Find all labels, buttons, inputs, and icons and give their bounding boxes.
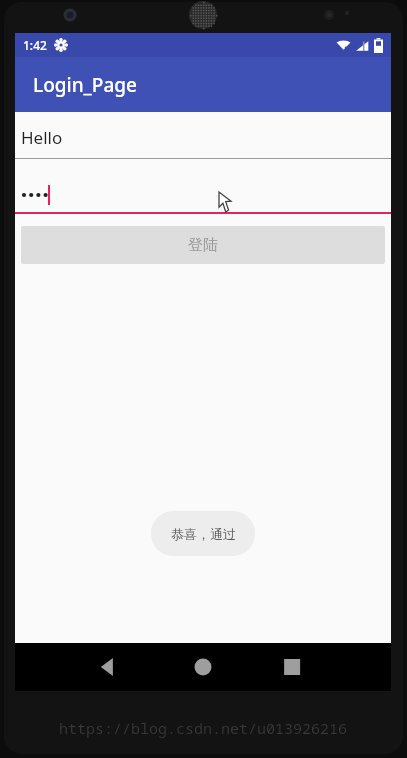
staticText: 1:42 xyxy=(23,37,47,53)
button[interactable]: Hello xyxy=(15,118,391,159)
staticText: https://blog.csdn.net/u013926216 xyxy=(59,718,348,738)
button[interactable]: Back xyxy=(15,643,141,691)
staticText: 恭喜，通过 xyxy=(171,526,236,542)
button[interactable] xyxy=(15,179,391,214)
staticText: Login_Page xyxy=(33,72,137,98)
staticText: Hello xyxy=(21,126,63,149)
button[interactable]: 登陆 xyxy=(21,226,385,264)
button[interactable]: Home xyxy=(141,643,266,691)
staticText: 登陆 xyxy=(188,236,218,255)
button[interactable]: Recent apps xyxy=(266,643,391,691)
other: Navigation bar xyxy=(15,643,391,691)
